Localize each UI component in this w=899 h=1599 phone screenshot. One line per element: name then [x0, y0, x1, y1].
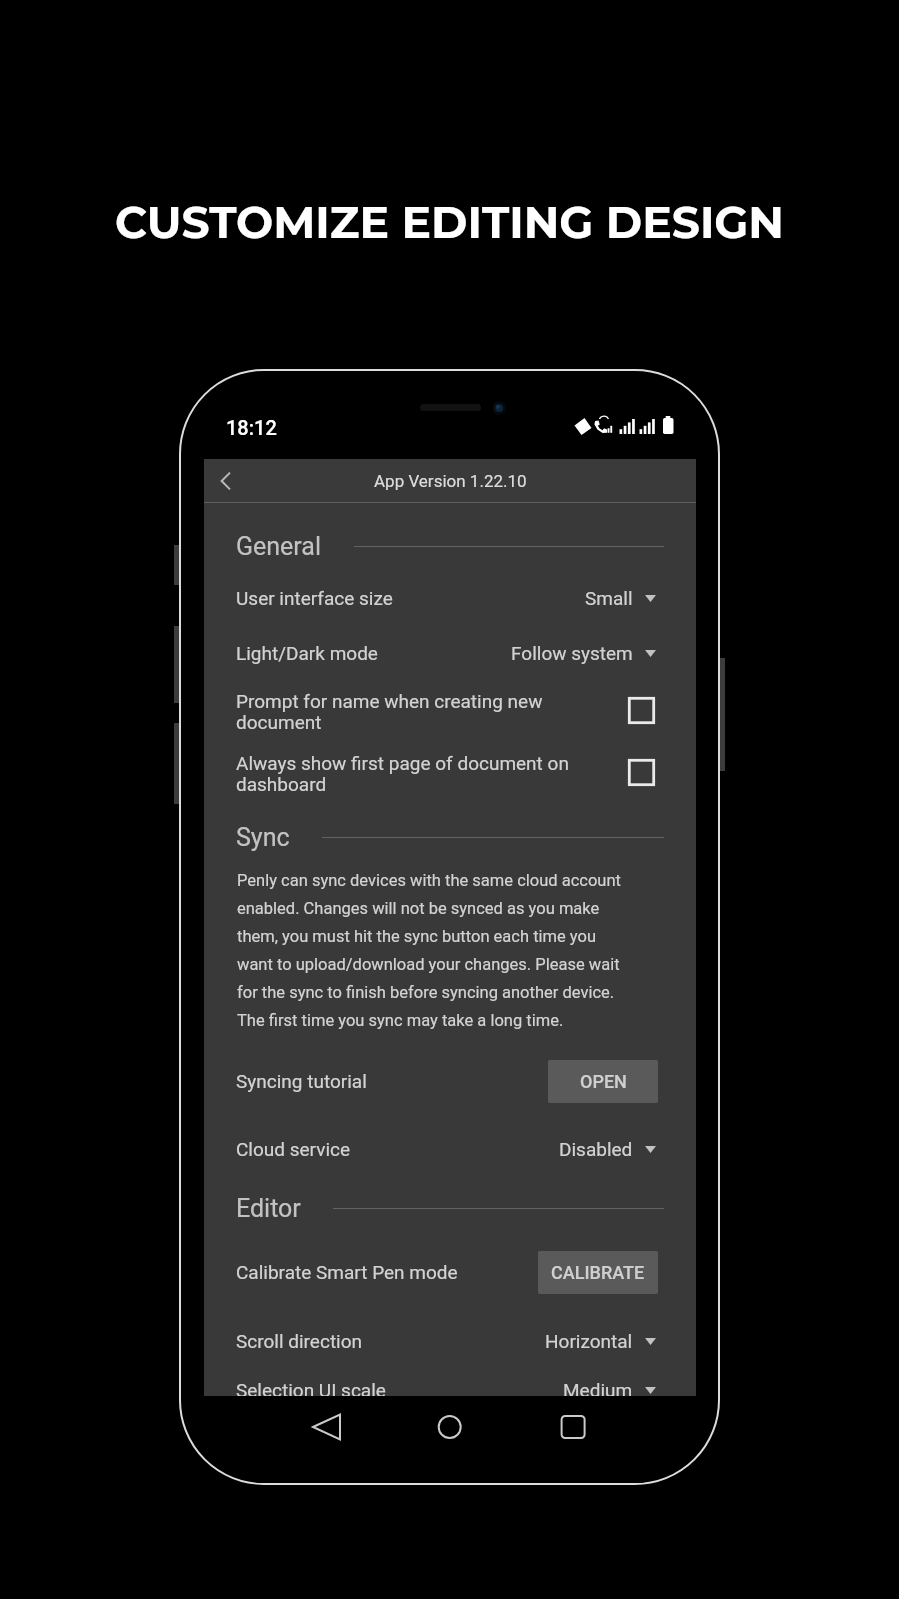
staticText: Light/Dark mode: [236, 642, 378, 664]
button[interactable]: OPEN: [548, 1060, 658, 1103]
button[interactable]: Home: [419, 1404, 480, 1450]
staticText: User interface size: [236, 587, 393, 609]
button[interactable]: Selection UI scale: [204, 1379, 696, 1396]
button[interactable]: CALIBRATE: [538, 1251, 658, 1294]
staticText: Cloud service: [236, 1138, 351, 1160]
staticText: Sync: [236, 823, 290, 852]
button[interactable]: Back: [296, 1404, 357, 1450]
button[interactable]: Scroll direction: [204, 1330, 696, 1364]
button[interactable]: Always show first page of document on da…: [204, 742, 696, 800]
staticText: Prompt for name when creating new docume…: [236, 690, 543, 734]
button[interactable]: User interface size: [204, 587, 696, 621]
staticText: 18:12: [226, 416, 277, 439]
staticText: Editor: [236, 1194, 301, 1223]
staticText: Medium: [563, 1379, 633, 1396]
button[interactable]: Cloud service: [204, 1138, 696, 1172]
staticText: Small: [585, 587, 633, 609]
staticText: Disabled: [559, 1138, 633, 1160]
staticText: Follow system: [511, 642, 633, 664]
staticText: Syncing tutorial: [236, 1070, 367, 1092]
staticText: General: [236, 532, 322, 561]
button[interactable]: Recent apps: [542, 1404, 603, 1450]
button[interactable]: Prompt for name when creating new docume…: [204, 680, 696, 738]
staticText: OPEN: [580, 1071, 627, 1092]
staticText: Selection UI scale: [236, 1379, 386, 1396]
staticText: Calibrate Smart Pen mode: [236, 1261, 458, 1283]
button[interactable]: Back: [204, 459, 248, 503]
staticText: Horizontal: [545, 1330, 633, 1352]
staticText: Penly can sync devices with the same clo…: [237, 871, 621, 1031]
staticText: Scroll direction: [236, 1330, 363, 1352]
button[interactable]: Light/Dark mode: [204, 642, 696, 676]
staticText: App Version 1.22.10: [374, 471, 527, 491]
staticText: CALIBRATE: [551, 1262, 645, 1283]
staticText: Always show first page of document on da…: [236, 752, 569, 796]
staticText: CUSTOMIZE EDITING DESIGN: [0, 195, 899, 249]
